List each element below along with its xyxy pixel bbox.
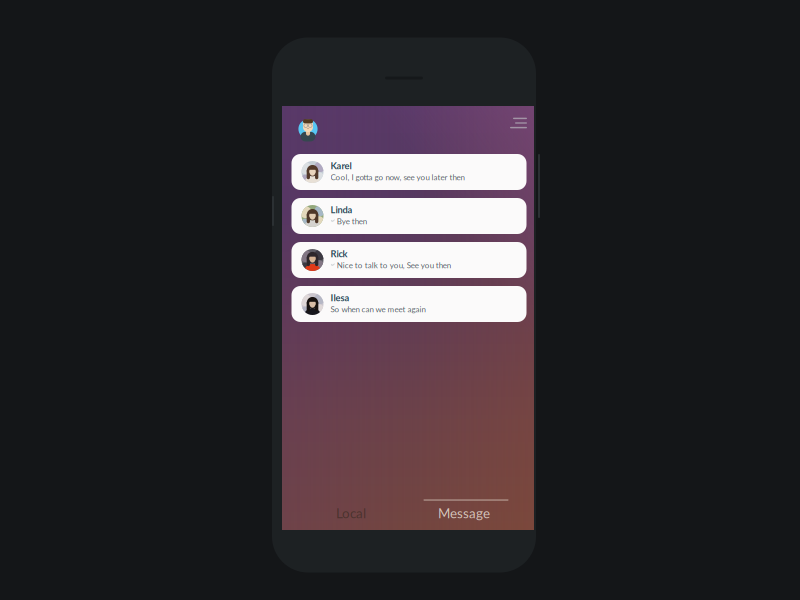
button[interactable]: Karel	[291, 154, 526, 190]
staticText: Ilesa	[330, 292, 349, 303]
button[interactable]: Local	[282, 486, 408, 530]
staticText: Rick	[330, 248, 347, 259]
staticText: Linda	[330, 204, 352, 215]
button[interactable]: Rick	[291, 242, 526, 278]
button[interactable]: Profile	[292, 112, 324, 144]
button[interactable]: Message	[408, 486, 534, 530]
staticText: Karel	[330, 160, 351, 171]
button[interactable]: Linda	[291, 198, 526, 234]
button[interactable]: Ilesa	[291, 286, 526, 322]
staticText: Nice to talk to you, See you then	[337, 260, 451, 270]
staticText: Bye then	[337, 216, 367, 226]
staticText: So when can we meet again	[330, 304, 425, 314]
staticText: Local	[336, 505, 366, 521]
staticText: Cool, I gotta go now, see you later then	[330, 172, 464, 182]
button[interactable]: Menu	[503, 114, 531, 142]
staticText: Message	[438, 505, 490, 521]
